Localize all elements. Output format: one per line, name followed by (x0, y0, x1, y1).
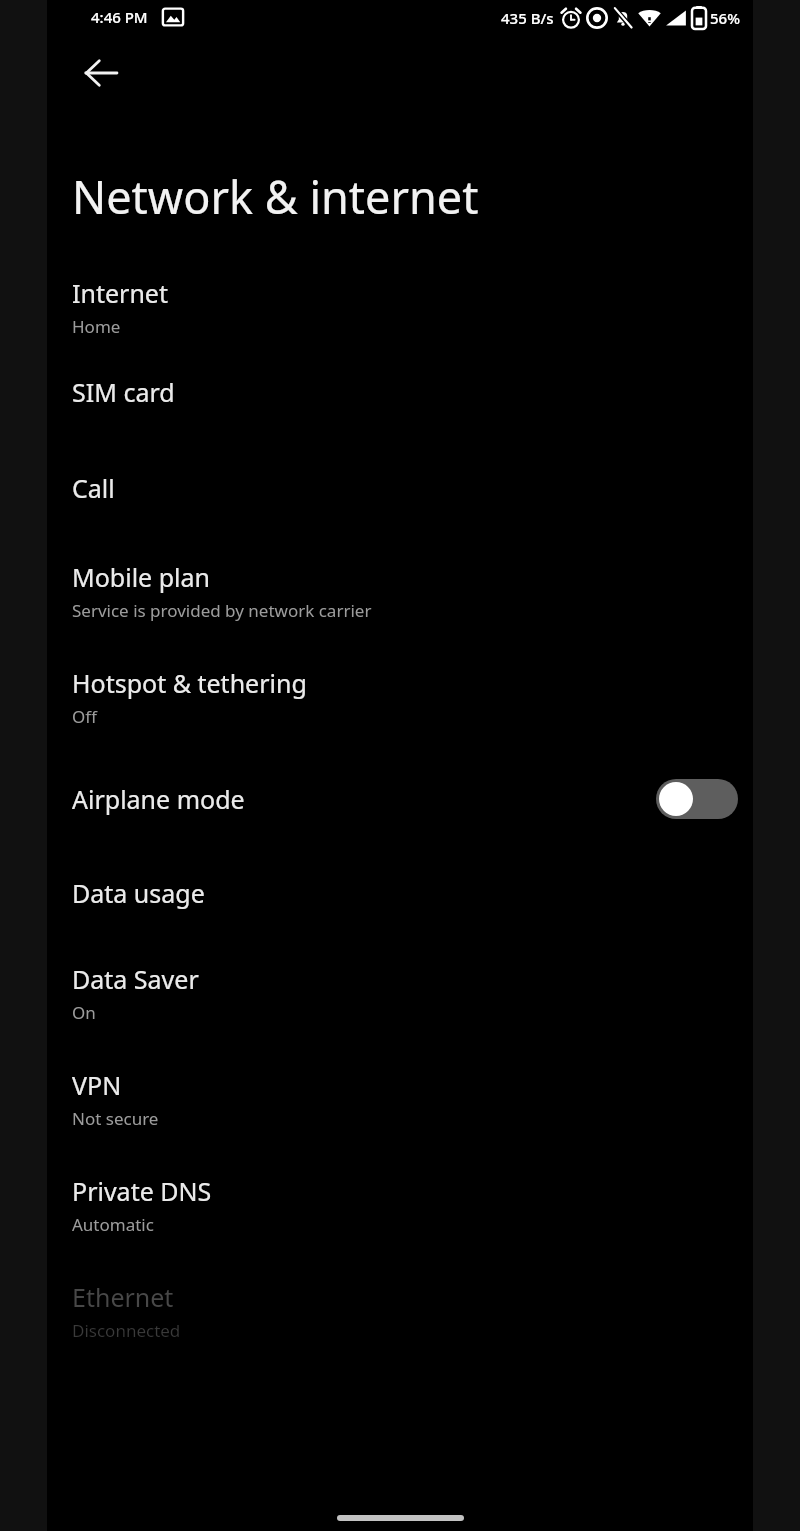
staticText: Home (72, 315, 121, 338)
staticText: Hotspot & tethering (72, 666, 307, 700)
staticText: Disconnected (72, 1319, 181, 1342)
staticText: Ethernet (72, 1280, 174, 1314)
staticText: SIM card (72, 375, 175, 409)
staticText: Off (72, 705, 97, 728)
button[interactable]: Private DNS (47, 1169, 753, 1241)
button[interactable]: Back (65, 37, 137, 109)
staticText: 56% (710, 8, 740, 28)
button[interactable]: Data usage (47, 868, 753, 918)
staticText: On (72, 1001, 96, 1024)
button[interactable]: Data Saver (47, 957, 753, 1029)
staticText: 435 B/s (501, 8, 554, 28)
button[interactable]: Airplane mode (47, 771, 753, 827)
button[interactable]: Airplane mode (656, 779, 738, 819)
staticText: Private DNS (72, 1174, 212, 1208)
staticText: Automatic (72, 1213, 154, 1236)
button[interactable]: Call (47, 463, 753, 513)
staticText: Not secure (72, 1107, 159, 1130)
staticText: Mobile plan (72, 560, 210, 594)
staticText: Data Saver (72, 962, 199, 996)
button[interactable]: Ethernet (47, 1275, 753, 1347)
button[interactable]: Mobile plan (47, 555, 753, 627)
staticText: Data usage (72, 876, 205, 910)
staticText: 4:46 PM (91, 7, 148, 27)
staticText: Internet (72, 276, 168, 310)
staticText: Service is provided by network carrier (72, 599, 372, 622)
button[interactable]: VPN (47, 1063, 753, 1135)
button[interactable]: Hotspot & tethering (47, 661, 753, 733)
staticText: Airplane mode (72, 782, 245, 816)
button[interactable]: Internet (47, 271, 753, 343)
staticText: VPN (72, 1068, 122, 1102)
button[interactable]: SIM card (47, 367, 753, 417)
staticText: Call (72, 471, 115, 505)
staticText: Network & internet (72, 166, 479, 227)
